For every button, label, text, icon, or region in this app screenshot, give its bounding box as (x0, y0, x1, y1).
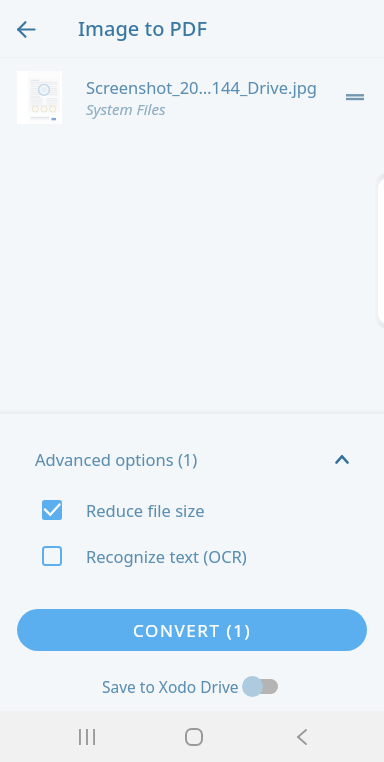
button[interactable]: Advanced options (1) (0, 437, 384, 481)
staticText: Reduce file size (86, 499, 205, 521)
button[interactable]: Home (172, 711, 216, 762)
other: Save to Xodo Drive toggle (242, 673, 278, 699)
staticText: System Files (86, 99, 166, 119)
button[interactable]: Reduce file size (0, 487, 384, 532)
button[interactable]: Back (3, 6, 49, 52)
button[interactable]: Save to Xodo Drive (95, 669, 278, 703)
button[interactable]: Reorder (332, 75, 377, 120)
staticText: Screenshot_20…144_Drive.jpg (86, 76, 317, 98)
button[interactable]: Recents (65, 711, 109, 762)
button[interactable]: Recognize text (OCR) (0, 533, 384, 578)
button[interactable]: Screenshot_20…144_Drive.jpg (0, 59, 384, 136)
staticText: CONVERT (1) (133, 619, 252, 642)
staticText: Save to Xodo Drive (102, 676, 239, 697)
button[interactable]: Back (280, 711, 324, 762)
staticText: Image to PDF (78, 15, 207, 42)
button[interactable]: Collapse advanced options (321, 438, 363, 480)
staticText: Advanced options (1) (35, 448, 198, 470)
button[interactable]: CONVERT (1) (17, 609, 367, 651)
staticText: Recognize text (OCR) (86, 545, 247, 567)
